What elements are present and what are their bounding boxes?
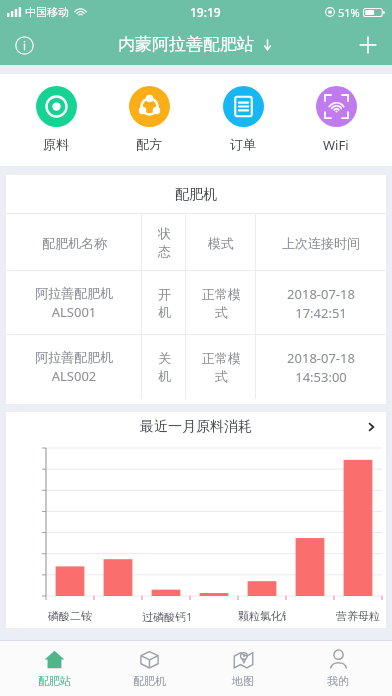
button[interactable]: 配肥机 <box>109 649 189 688</box>
staticText: 19:19 <box>190 4 221 20</box>
staticText: 内蒙阿拉善配肥站 <box>118 34 254 55</box>
button[interactable]: More details <box>356 412 386 442</box>
staticText: 配肥站 <box>38 674 71 688</box>
button[interactable]: 原料 <box>18 86 94 152</box>
button[interactable]: 配方 <box>111 86 187 152</box>
staticText: 配肥机 <box>133 674 166 688</box>
button[interactable]: 内蒙阿拉善配肥站 <box>118 34 274 55</box>
staticText: 配方 <box>136 136 162 152</box>
staticText: 我的 <box>327 674 349 688</box>
staticText: 上次连接时间 <box>282 235 360 251</box>
staticText: 状 态 <box>158 225 171 260</box>
button[interactable]: 地图 <box>203 649 283 688</box>
button[interactable]: Add <box>351 28 385 62</box>
staticText: 过磷酸钙1 <box>142 609 190 624</box>
button[interactable]: Info <box>7 28 41 62</box>
button[interactable]: 订单 <box>205 86 281 152</box>
staticText: 关 机 <box>158 350 171 385</box>
staticText: 原料 <box>43 136 69 152</box>
staticText: 最近一月原料消耗 <box>140 418 252 436</box>
staticText: 2018-07-18 17:42:51 <box>287 285 355 322</box>
staticText: 阿拉善配肥机 ALS002 <box>35 349 113 385</box>
staticText: 配肥机名称 <box>42 235 107 251</box>
staticText: 1,000 <box>20 550 46 551</box>
staticText: 500 <box>28 572 46 573</box>
staticText: 开 机 <box>158 286 171 321</box>
button[interactable]: 我的 <box>298 649 378 688</box>
staticText: 地图 <box>232 674 254 688</box>
staticText: 阿拉善配肥机 ALS001 <box>35 285 113 321</box>
staticText: 2,500 <box>20 481 46 482</box>
staticText: 正常模 式 <box>202 286 241 321</box>
staticText: 51% <box>338 5 360 20</box>
staticText: 2,000 <box>20 504 46 505</box>
staticText: 1,500 <box>20 527 46 528</box>
staticText: 正常模 式 <box>202 350 241 385</box>
staticText: 0 <box>40 595 46 596</box>
staticText: 2018-07-18 14:53:00 <box>287 349 355 386</box>
staticText: 模式 <box>208 235 234 251</box>
button[interactable]: 配肥站 <box>14 649 94 688</box>
button[interactable]: WiFi <box>298 86 374 154</box>
staticText: 3,000 <box>20 459 46 460</box>
staticText: 配肥机 <box>175 186 217 204</box>
staticText: 订单 <box>230 136 256 152</box>
staticText: 颗粒氯化钾 <box>238 609 286 623</box>
staticText: 磷酸二铵 <box>48 609 92 623</box>
staticText: 营养母粒 <box>336 609 380 623</box>
staticText: 中国移动 <box>25 5 69 19</box>
staticText: WiFi <box>323 136 349 154</box>
